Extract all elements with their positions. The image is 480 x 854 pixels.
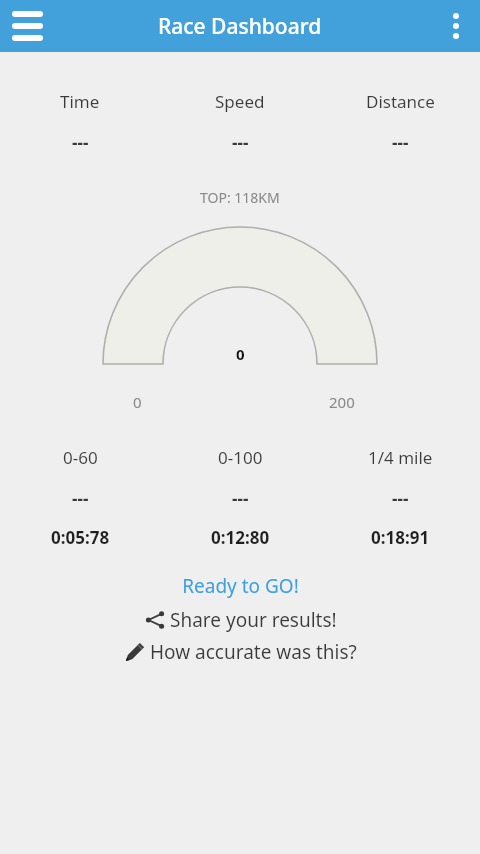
staticText: 0-60 bbox=[63, 446, 98, 469]
staticText: Time bbox=[60, 90, 100, 113]
staticText: 0:12:80 bbox=[211, 526, 270, 549]
button[interactable]: 1/4 mile bbox=[320, 446, 480, 549]
staticText: TOP: 118KM bbox=[200, 188, 280, 207]
staticText: --- bbox=[72, 487, 89, 510]
staticText: 0:18:91 bbox=[371, 526, 430, 549]
staticText: 0 bbox=[133, 392, 142, 412]
staticText: --- bbox=[72, 131, 89, 154]
staticText: --- bbox=[232, 131, 249, 154]
staticText: Race Dashboard bbox=[158, 12, 322, 41]
button[interactable]: More options bbox=[432, 2, 480, 50]
staticText: 0:05:78 bbox=[51, 526, 110, 549]
button[interactable]: Rate accuracy bbox=[0, 639, 480, 665]
other: Share bbox=[144, 609, 166, 631]
button[interactable]: Ready to GO! bbox=[0, 573, 480, 599]
button[interactable]: 0-100 bbox=[160, 446, 320, 549]
staticText: Share your results! bbox=[170, 607, 337, 633]
staticText: --- bbox=[232, 487, 249, 510]
staticText: --- bbox=[392, 131, 409, 154]
staticText: Distance bbox=[366, 90, 435, 113]
staticText: 1/4 mile bbox=[368, 446, 433, 469]
other: Rate accuracy bbox=[123, 640, 147, 664]
button[interactable]: 0-60 bbox=[0, 446, 160, 549]
button[interactable]: Open navigation menu bbox=[0, 0, 54, 52]
button[interactable]: Distance bbox=[320, 90, 480, 154]
button[interactable]: Speed bbox=[160, 90, 320, 154]
staticText: 0-100 bbox=[218, 446, 263, 469]
staticText: 200 bbox=[329, 392, 355, 412]
staticText: --- bbox=[392, 487, 409, 510]
staticText: Speed bbox=[215, 90, 265, 113]
button[interactable]: Share bbox=[0, 607, 480, 633]
staticText: Ready to GO! bbox=[182, 573, 299, 599]
staticText: How accurate was this? bbox=[150, 639, 357, 665]
staticText: 0 bbox=[236, 344, 245, 364]
button[interactable]: Time bbox=[0, 90, 160, 154]
